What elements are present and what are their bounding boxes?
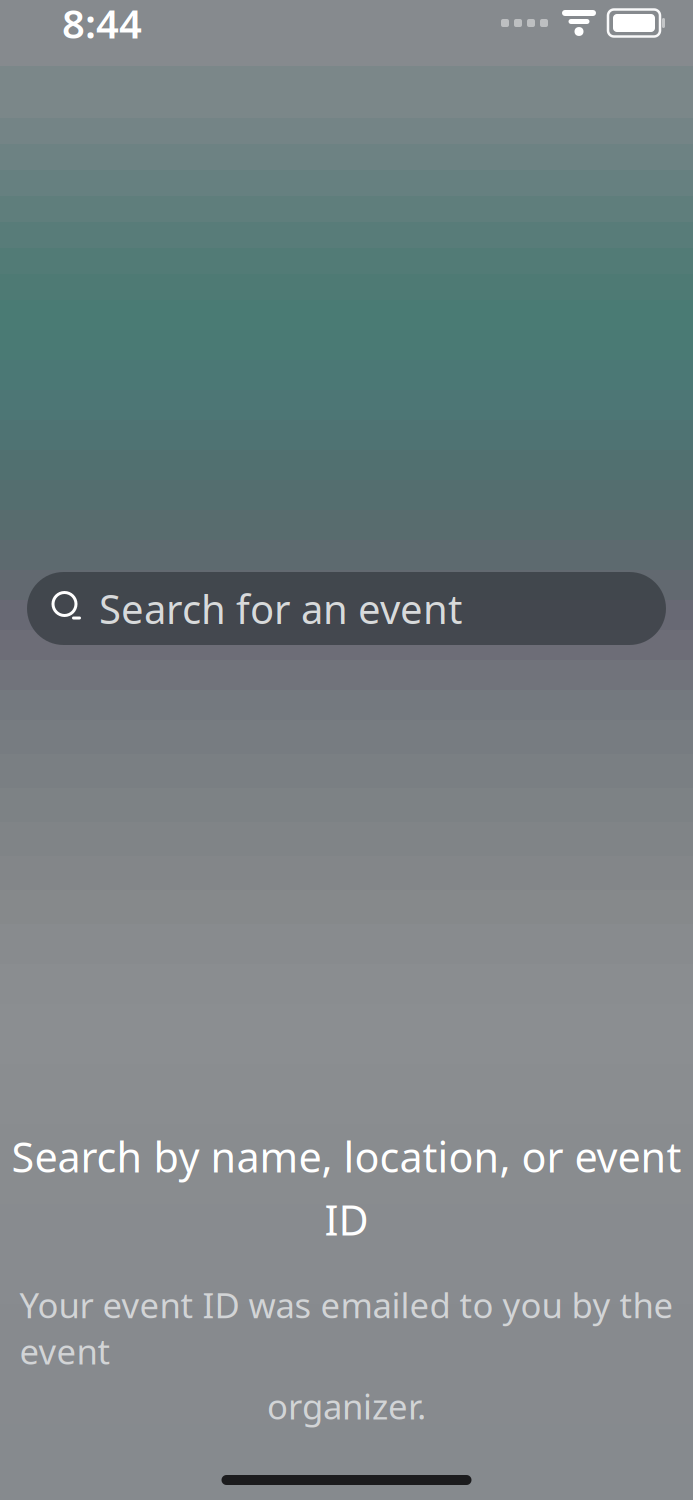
button[interactable]: Search for an event [27, 572, 666, 645]
staticText: Search by name, location, or event [11, 1129, 681, 1184]
staticText: ID [324, 1192, 368, 1247]
staticText: Search for an event [99, 582, 462, 635]
staticText: 8:44 [62, 0, 142, 49]
staticText: Your event ID was emailed to you by the … [19, 1282, 673, 1374]
staticText: organizer. [267, 1383, 426, 1429]
